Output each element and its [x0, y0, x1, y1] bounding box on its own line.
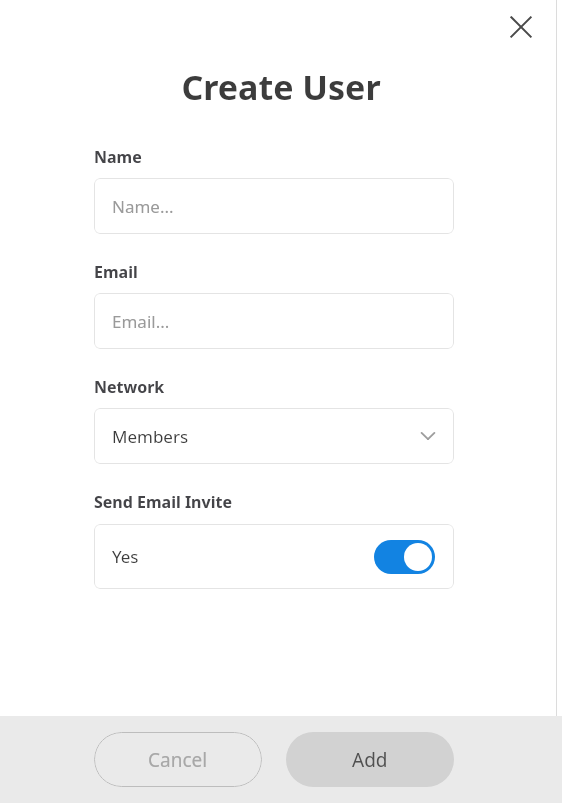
staticText: Members	[112, 425, 189, 448]
button[interactable]: Send email invite, on	[374, 540, 435, 574]
staticText: Name	[94, 146, 142, 168]
button[interactable]: Name...	[94, 178, 454, 234]
staticText: Yes	[112, 545, 139, 568]
button[interactable]: Cancel	[94, 732, 262, 787]
button[interactable]: Network selector	[94, 408, 454, 464]
staticText: Send Email Invite	[94, 491, 232, 513]
staticText: Email...	[112, 310, 170, 333]
staticText: Add	[352, 747, 388, 773]
staticText: Network	[94, 376, 165, 398]
button[interactable]: Email...	[94, 293, 454, 349]
staticText: Email	[94, 261, 138, 283]
button[interactable]: Close	[500, 6, 542, 48]
button[interactable]: Add	[286, 732, 454, 787]
staticText: Create User	[181, 64, 381, 110]
staticText: Name...	[112, 195, 174, 218]
staticText: Cancel	[148, 747, 208, 773]
